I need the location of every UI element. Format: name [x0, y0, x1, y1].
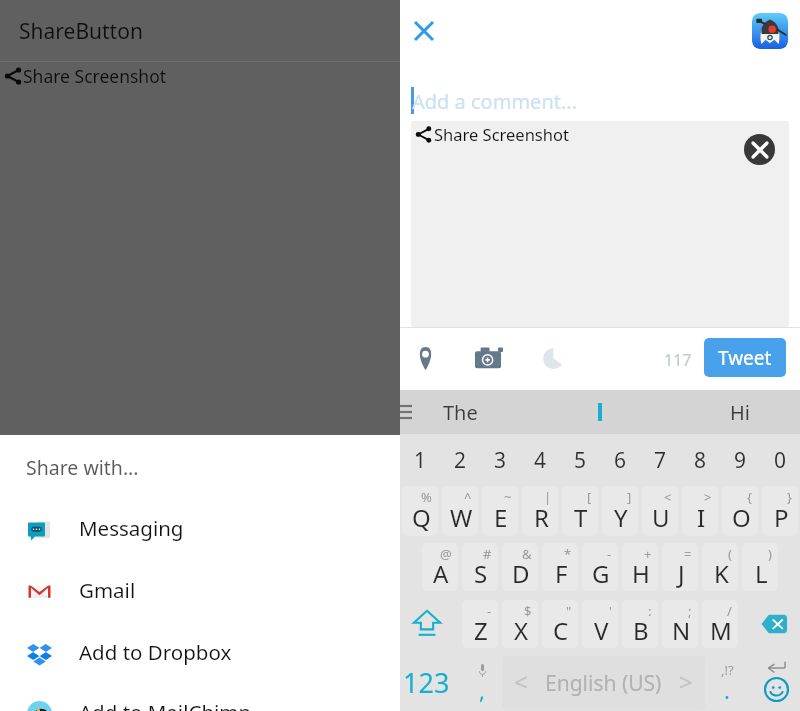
button[interactable]: {: [722, 486, 758, 536]
button[interactable]: 2: [440, 435, 480, 485]
button[interactable]: 8: [680, 435, 720, 485]
staticText: 123: [403, 664, 450, 701]
button[interactable]: Emoji: [752, 655, 800, 711]
button[interactable]: :: [622, 600, 658, 648]
button[interactable]: ]: [602, 486, 638, 536]
button[interactable]: 6: [600, 435, 640, 485]
button[interactable]: Camera: [472, 341, 506, 375]
button[interactable]: -: [462, 600, 498, 648]
staticText: F: [555, 557, 568, 590]
button[interactable]: >: [682, 486, 718, 536]
staticText: 1: [414, 446, 427, 475]
staticText: 8: [694, 446, 707, 475]
staticText: >: [679, 665, 693, 698]
staticText: B: [633, 614, 649, 647]
staticText: W: [450, 501, 473, 534]
button[interactable]: ^: [442, 486, 478, 536]
button[interactable]: ;: [662, 600, 698, 648]
button[interactable]: /: [702, 600, 738, 648]
button[interactable]: -: [582, 543, 618, 591]
staticText: +: [644, 545, 652, 563]
staticText: 3: [494, 446, 507, 475]
staticText: The: [443, 399, 478, 426]
staticText: U: [652, 501, 670, 534]
button[interactable]: Profile: [752, 13, 788, 49]
button[interactable]: 5: [560, 435, 600, 485]
button[interactable]: 9: [720, 435, 760, 485]
button[interactable]: Tweet: [704, 338, 786, 377]
button[interactable]: ): [742, 543, 778, 591]
button[interactable]: [: [562, 486, 598, 536]
button[interactable]: (: [702, 543, 738, 591]
staticText: }: [787, 488, 792, 506]
staticText: ;: [688, 602, 692, 620]
button[interactable]: ': [582, 600, 618, 648]
button[interactable]: $: [502, 600, 538, 648]
staticText: <: [514, 665, 528, 698]
button[interactable]: 0: [760, 435, 800, 485]
button[interactable]: 3: [480, 435, 520, 485]
staticText: O: [732, 501, 751, 534]
button[interactable]: 123: [400, 655, 452, 711]
staticText: {: [747, 488, 752, 506]
button[interactable]: Messaging: [0, 499, 400, 561]
button[interactable]: ~: [482, 486, 518, 536]
button[interactable]: 1: [400, 435, 440, 485]
button[interactable]: Close: [404, 11, 444, 51]
button[interactable]: }: [762, 486, 798, 536]
button[interactable]: <: [642, 486, 678, 536]
staticText: M: [710, 614, 732, 647]
staticText: S: [474, 557, 488, 590]
staticText: Z: [474, 614, 488, 647]
button[interactable]: =: [662, 543, 698, 591]
staticText: ]: [627, 488, 632, 506]
button[interactable]: 4: [520, 435, 560, 485]
button[interactable]: ,: [462, 655, 502, 711]
staticText: G: [592, 557, 610, 590]
button[interactable]: Gmail: [0, 561, 400, 623]
staticText: 9: [734, 446, 747, 475]
staticText: ": [566, 602, 572, 620]
button[interactable]: Add to MailChimp: [0, 685, 400, 711]
staticText: J: [678, 557, 685, 590]
button[interactable]: +: [622, 543, 658, 591]
staticText: R: [534, 501, 549, 534]
button[interactable]: Poll: [536, 341, 570, 375]
staticText: Q: [412, 501, 431, 534]
staticText: Y: [614, 501, 628, 534]
staticText: I: [697, 501, 706, 534]
staticText: K: [714, 557, 729, 590]
staticText: :: [648, 602, 652, 620]
staticText: H: [632, 557, 650, 590]
staticText: ): [768, 545, 772, 563]
button[interactable]: ,!?: [705, 655, 749, 711]
button[interactable]: Backspace: [754, 599, 794, 649]
button[interactable]: *: [542, 543, 578, 591]
button[interactable]: Location: [408, 341, 442, 375]
button[interactable]: Remove: [744, 134, 775, 165]
staticText: <: [664, 488, 672, 506]
button[interactable]: &: [502, 543, 538, 591]
staticText: Tweet: [718, 345, 772, 371]
button[interactable]: |: [522, 486, 558, 536]
staticText: ShareButton: [19, 17, 143, 46]
staticText: Hi: [730, 399, 750, 426]
button[interactable]: %: [402, 486, 438, 536]
staticText: Share Screenshot: [23, 64, 167, 88]
button[interactable]: Share Screenshot: [0, 63, 400, 89]
button[interactable]: ": [542, 600, 578, 648]
staticText: N: [672, 614, 691, 647]
staticText: L: [755, 557, 768, 590]
button[interactable]: Add to Dropbox: [0, 623, 400, 685]
staticText: ': [609, 602, 612, 620]
button[interactable]: 7: [640, 435, 680, 485]
staticText: C: [553, 614, 569, 647]
button[interactable]: @: [422, 543, 458, 591]
button[interactable]: <: [502, 656, 705, 710]
staticText: T: [574, 501, 588, 534]
button[interactable]: Shift: [407, 599, 447, 649]
button[interactable]: #: [462, 543, 498, 591]
staticText: ,!?: [721, 661, 734, 679]
staticText: -: [487, 602, 492, 620]
staticText: Add to Dropbox: [79, 638, 232, 666]
